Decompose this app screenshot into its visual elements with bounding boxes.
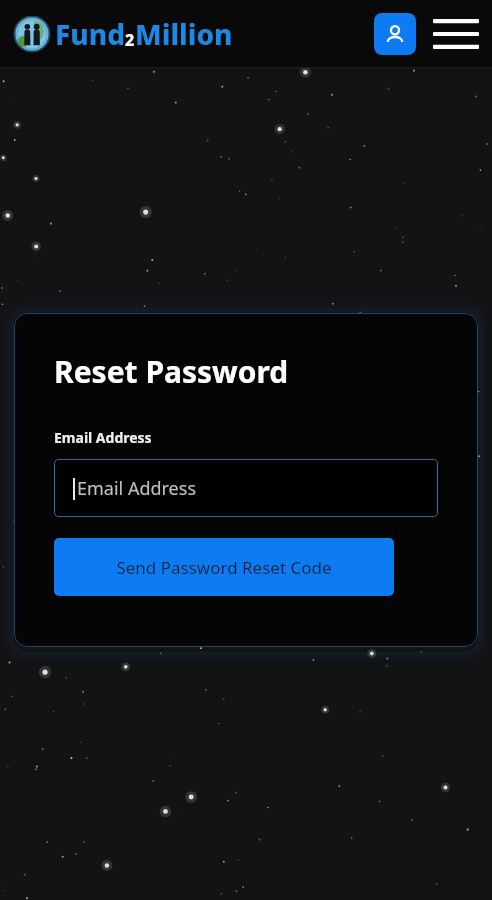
- staticText: 2: [125, 29, 135, 51]
- staticText: Email Address: [54, 428, 152, 447]
- button[interactable]: Menu: [432, 13, 480, 55]
- button[interactable]: Email Address: [54, 459, 438, 517]
- staticText: Million: [135, 15, 233, 53]
- staticText: Email Address: [77, 476, 197, 501]
- button[interactable]: Fund: [14, 15, 233, 53]
- staticText: Fund: [55, 15, 125, 53]
- staticText: Reset Password: [54, 351, 289, 392]
- button[interactable]: Send Password Reset Code: [54, 538, 394, 596]
- button[interactable]: Account: [374, 13, 416, 55]
- staticText: Send Password Reset Code: [116, 556, 332, 579]
